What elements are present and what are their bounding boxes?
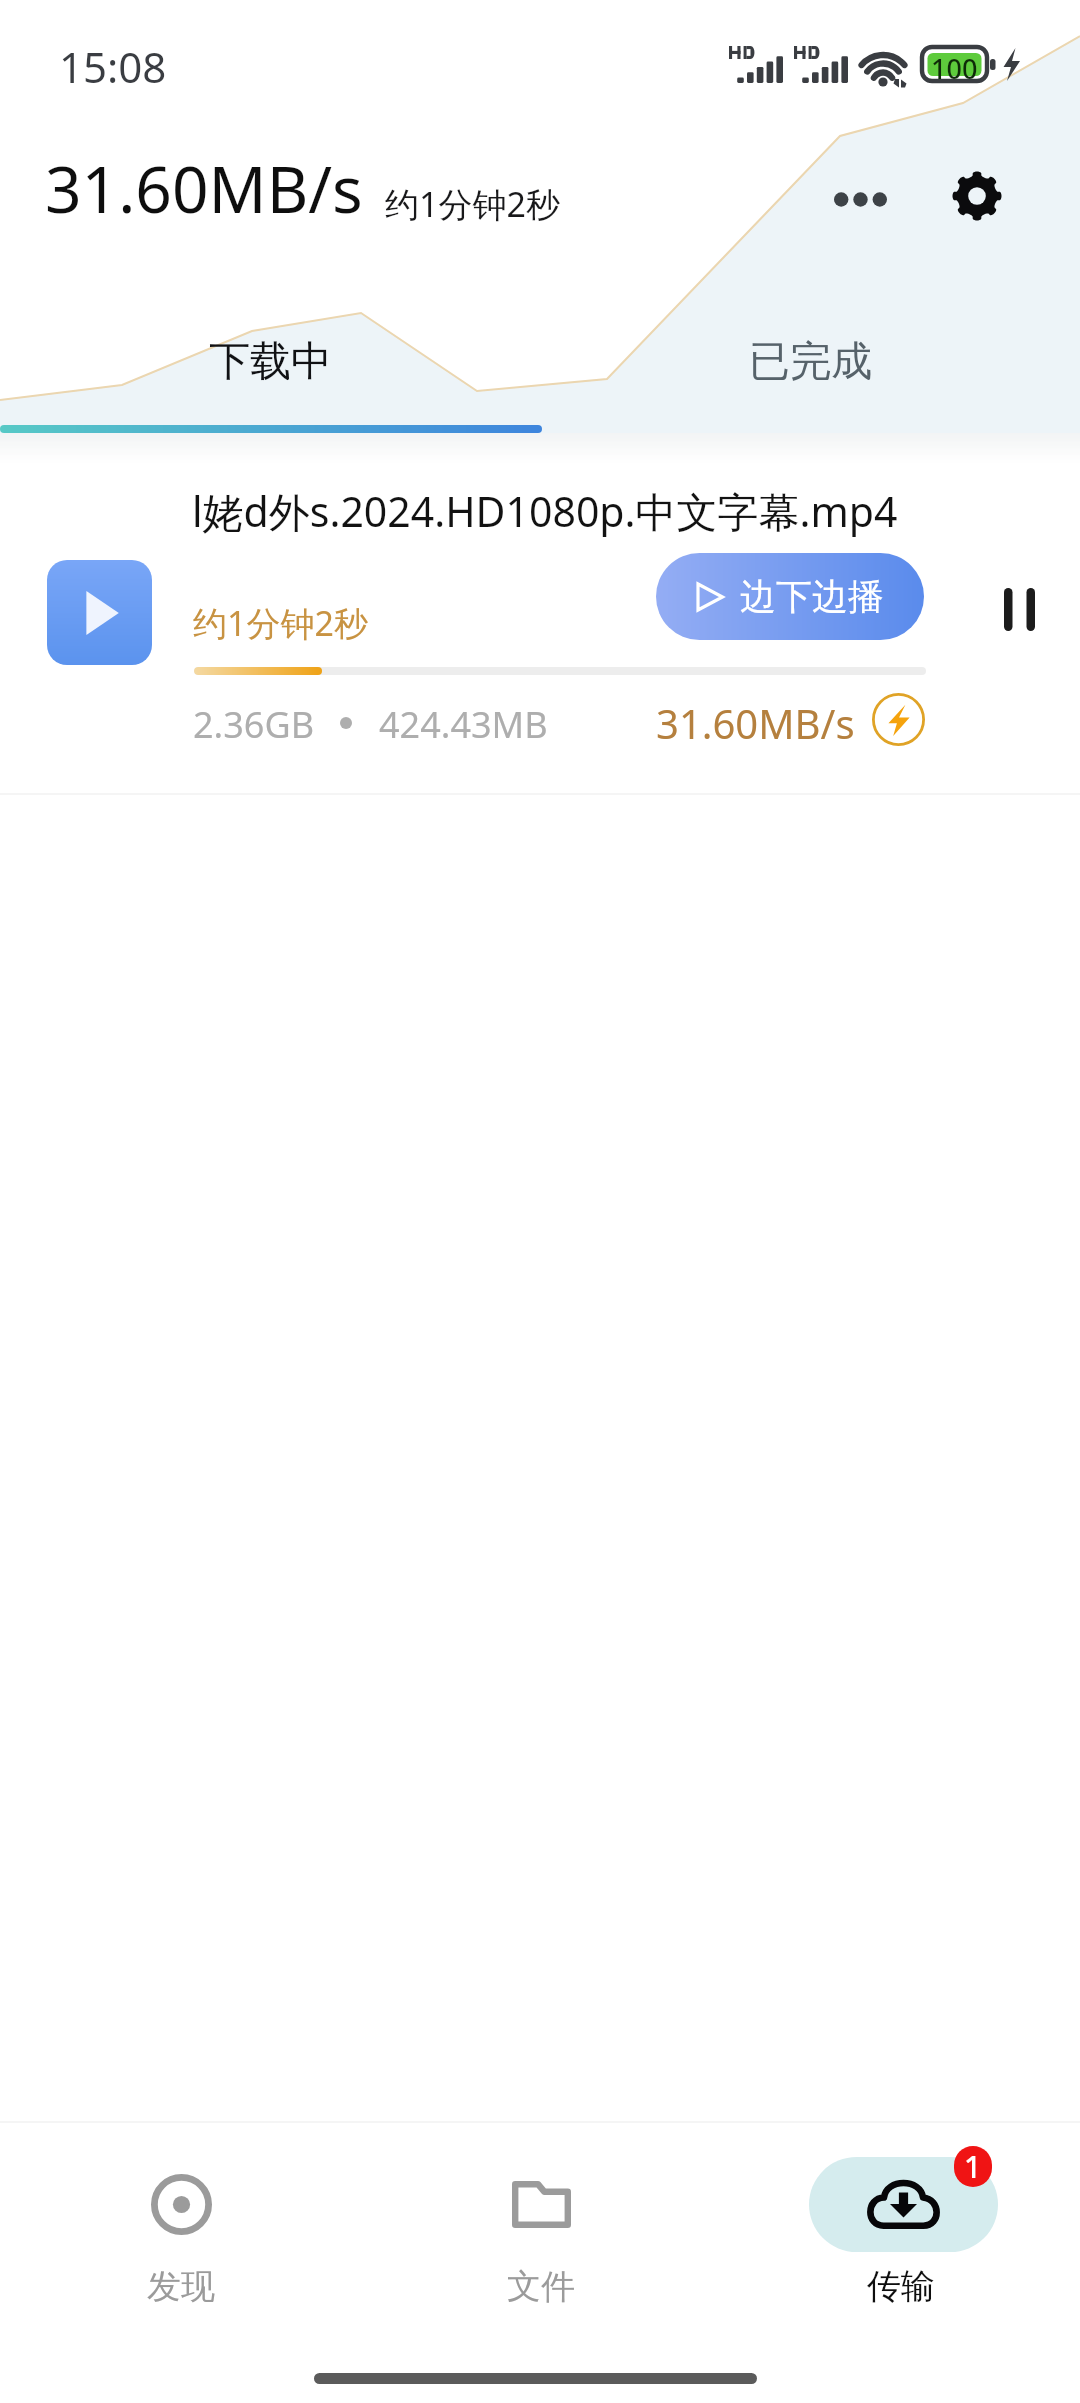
button[interactable]: 发现 xyxy=(1,2123,361,2323)
staticText: l姥d外s.2024.HD1080p.中文字幕.mp4 xyxy=(192,483,898,539)
staticText: 约1分钟2秒 xyxy=(385,181,560,227)
staticText: 15:08 xyxy=(59,38,167,95)
button[interactable]: 传输 xyxy=(721,2123,1080,2323)
button[interactable]: More options xyxy=(816,155,904,243)
button[interactable]: Settings xyxy=(933,152,1021,240)
staticText: 424.43MB xyxy=(379,700,548,749)
staticText: 文件 xyxy=(507,2265,575,2308)
staticText: 31.60MB/s xyxy=(656,696,855,750)
staticText: 约1分钟2秒 xyxy=(193,600,368,646)
staticText: 31.60MB/s xyxy=(45,145,363,232)
staticText: 发现 xyxy=(147,2265,215,2308)
staticText: 已完成 xyxy=(749,336,872,388)
button[interactable]: 文件 xyxy=(361,2123,721,2323)
staticText: 边下边播 xyxy=(740,574,884,619)
staticText: 2.36GB xyxy=(193,700,315,749)
button[interactable]: 已完成 xyxy=(540,318,1080,406)
staticText: 1 xyxy=(964,2146,982,2187)
staticText: 100 xyxy=(931,50,978,86)
button[interactable]: Play video xyxy=(47,560,152,665)
button[interactable]: 下载中 xyxy=(0,318,540,406)
staticText: 下载中 xyxy=(209,336,332,388)
button[interactable]: l姥d外s.2024.HD1080p.中文字幕.mp4 xyxy=(0,463,1080,793)
staticText: 传输 xyxy=(867,2265,935,2308)
button[interactable]: Pause xyxy=(974,564,1064,654)
button[interactable]: 边下边播 xyxy=(656,553,924,640)
